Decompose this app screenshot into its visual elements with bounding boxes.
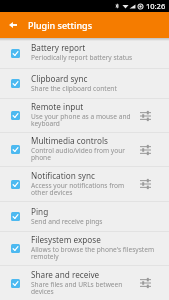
staticText: Share the clipboard content (31, 84, 117, 93)
staticText: Multimedia controls (31, 135, 108, 146)
button[interactable]: Toggle Notification sync (0, 167, 169, 201)
button[interactable]: Settings for Share and receive (136, 273, 155, 293)
button[interactable]: Toggle Remote input (11, 111, 20, 120)
button[interactable]: Toggle Filesystem expose (0, 232, 169, 265)
staticText: Share files and URLs between devices (31, 280, 134, 296)
button[interactable]: Toggle Notification sync (11, 180, 20, 189)
button[interactable]: Toggle Filesystem expose (11, 244, 20, 253)
staticText: 10:26 (146, 1, 166, 11)
staticText: Plugin settings (28, 19, 93, 31)
staticText: Access your notifications from other dev… (31, 181, 134, 197)
button[interactable]: Toggle Ping (0, 202, 169, 231)
staticText: Share and receive (31, 269, 100, 280)
staticText: Control audio/video from your phone (31, 146, 134, 162)
staticText: Ping (31, 206, 49, 217)
button[interactable]: Toggle Remote input (0, 99, 169, 132)
staticText: Periodically report battery status (31, 53, 133, 62)
staticText: Use your phone as a mouse and keyboard (31, 112, 134, 128)
button[interactable]: Toggle Battery report (11, 49, 20, 58)
button[interactable]: Toggle Clipboard sync (11, 79, 20, 88)
button[interactable]: Back (0, 12, 26, 38)
button[interactable]: Toggle Multimedia controls (0, 133, 169, 166)
button[interactable]: Toggle Ping (11, 212, 20, 221)
button[interactable]: Settings for Remote input (136, 106, 155, 126)
staticText: Remote input (31, 101, 84, 112)
staticText: Battery report (31, 42, 86, 53)
button[interactable]: Toggle Battery report (0, 38, 169, 68)
button[interactable]: Toggle Share and receive (0, 266, 169, 300)
staticText: Allows to browse the phone's filesystem … (31, 245, 155, 261)
button[interactable]: Settings for Multimedia controls (136, 140, 155, 160)
button[interactable]: Toggle Share and receive (11, 279, 20, 288)
staticText: Notification sync (31, 170, 95, 181)
button[interactable]: Toggle Multimedia controls (11, 145, 20, 154)
button[interactable]: Toggle Clipboard sync (0, 69, 169, 98)
button[interactable]: Settings for Notification sync (136, 174, 155, 194)
staticText: Filesystem expose (31, 234, 101, 245)
staticText: Clipboard sync (31, 73, 88, 84)
staticText: Send and receive pings (31, 217, 103, 226)
